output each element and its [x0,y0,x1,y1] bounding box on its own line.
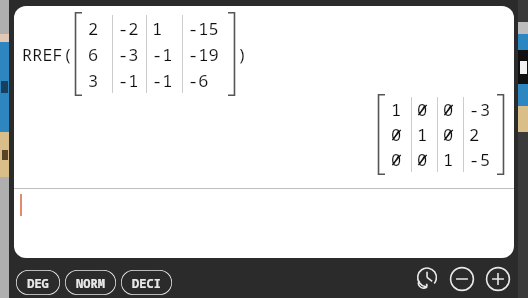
staticText: 3 [480,98,491,121]
staticText: RREF( [22,43,73,66]
button[interactable]: RREF( [14,6,514,258]
button[interactable]: Zoom out [446,263,478,295]
staticText: - [469,98,480,121]
staticText: DEG [27,275,49,291]
staticText: 1 [443,148,454,171]
staticText: 0 [417,148,428,171]
staticText: ) [237,43,248,66]
button[interactable]: DEG [16,270,60,295]
staticText: -1 [152,69,173,92]
staticText: -1 [152,43,173,66]
button[interactable]: Zoom in [482,263,514,295]
button[interactable]: DECI [121,270,172,295]
staticText: 5 [480,148,491,171]
staticText: 0 [391,148,402,171]
button[interactable]: NORM [65,270,116,295]
staticText: -2 [118,17,139,40]
staticText: -3 [118,43,139,66]
staticText: DECI [132,275,161,291]
staticText: 6 [88,43,99,66]
staticText: - [469,148,480,171]
staticText: 0 [391,123,402,146]
staticText: 3 [88,69,99,92]
staticText: 0 [443,123,454,146]
staticText: -1 [118,69,139,92]
button[interactable]: History [410,263,442,295]
staticText: -6 [188,69,209,92]
staticText: 2 [88,17,99,40]
staticText: 2 [469,123,480,146]
staticText: 1 [417,123,428,146]
staticText: 0 [443,98,454,121]
staticText: -15 [188,17,219,40]
staticText: 0 [417,98,428,121]
staticText: 1 [391,98,402,121]
staticText: 1 [152,17,163,40]
staticText: -19 [188,43,219,66]
staticText: NORM [76,275,105,291]
